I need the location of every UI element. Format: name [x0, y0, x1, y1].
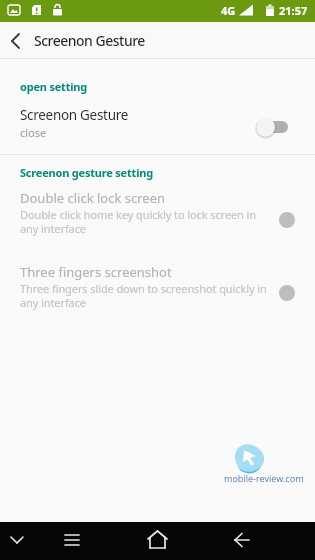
staticText: Screenon Gesture: [34, 31, 145, 50]
staticText: Three fingers slide down to screenshot q…: [20, 281, 267, 310]
button[interactable]: [55, 522, 89, 560]
button[interactable]: Double click lock screen: [0, 186, 315, 248]
staticText: 21:57: [279, 3, 308, 18]
button[interactable]: [140, 522, 175, 560]
button[interactable]: Screenon Gesture: [0, 100, 315, 150]
staticText: open setting: [20, 79, 88, 94]
button[interactable]: [0, 522, 34, 560]
staticText: Three fingers screenshot: [20, 263, 172, 281]
staticText: Double click home key quickly to lock sc…: [20, 207, 256, 236]
staticText: Screenon Gesture: [20, 106, 129, 124]
button[interactable]: [225, 522, 259, 560]
staticText: close: [20, 125, 47, 140]
staticText: Screenon gesture setting: [20, 165, 153, 180]
staticText: mobile-review.com: [224, 472, 304, 484]
staticText: Double click lock screen: [20, 189, 166, 207]
staticText: 4G: [221, 3, 236, 18]
button[interactable]: Three fingers screenshot: [0, 260, 315, 322]
button[interactable]: Screenon Gesture: [0, 22, 315, 58]
